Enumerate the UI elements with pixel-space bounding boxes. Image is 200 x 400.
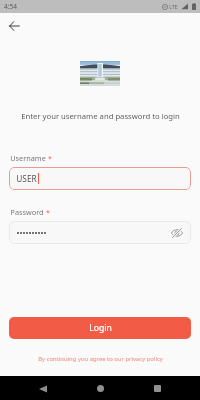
staticText: Password [10,207,44,217]
staticText: By continuing you agree to our privacy p… [38,355,163,363]
button[interactable]: By continuing you agree to our privacy p… [0,355,200,363]
staticText: * [46,208,50,218]
button[interactable]: USER [9,167,191,190]
staticText: Login [89,322,112,334]
staticText: * [48,154,52,164]
staticText: LTE [169,3,178,10]
staticText: 4:54 [4,2,17,11]
button[interactable]: Back [32,378,53,399]
button[interactable]: Recents [147,378,168,399]
button[interactable]: Home [90,378,111,399]
button[interactable]: Show password [9,221,191,244]
button[interactable]: Show password [170,226,184,240]
button[interactable]: Login [9,317,191,339]
button[interactable]: Back [5,16,24,35]
staticText: Enter your username and password to logi… [21,111,180,121]
staticText: Username [10,153,46,163]
staticText: USER [16,173,37,184]
